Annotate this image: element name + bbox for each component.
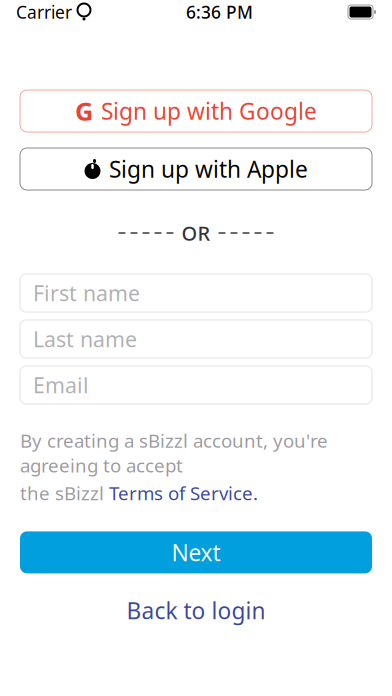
button[interactable]: G xyxy=(0,90,392,132)
staticText: By creating a sBizzl account, you're agr… xyxy=(20,428,328,478)
button[interactable]: Back to login xyxy=(0,597,392,623)
button[interactable]: Terms of Service. xyxy=(109,481,258,505)
staticText: G xyxy=(75,94,93,128)
staticText: Next xyxy=(171,537,220,567)
button[interactable]: Last name xyxy=(0,320,392,358)
staticText: Carrier xyxy=(16,0,72,23)
staticText: Email xyxy=(33,371,89,399)
button[interactable]: First name xyxy=(0,274,392,312)
staticText: 6:36 PM xyxy=(186,0,253,23)
staticText: Terms of Service. xyxy=(109,481,258,505)
staticText: Back to login xyxy=(126,595,265,625)
staticText: First name xyxy=(33,279,140,307)
staticText: Sign up with Apple xyxy=(109,154,308,184)
button[interactable]: Next xyxy=(0,531,392,573)
staticText: OR xyxy=(181,220,210,246)
button[interactable]: Email xyxy=(0,366,392,404)
staticText: Sign up with Google xyxy=(101,96,317,126)
staticText: Last name xyxy=(33,325,137,353)
staticText: the sBizzl xyxy=(20,481,109,505)
button[interactable]: Sign up with Apple xyxy=(0,148,392,190)
